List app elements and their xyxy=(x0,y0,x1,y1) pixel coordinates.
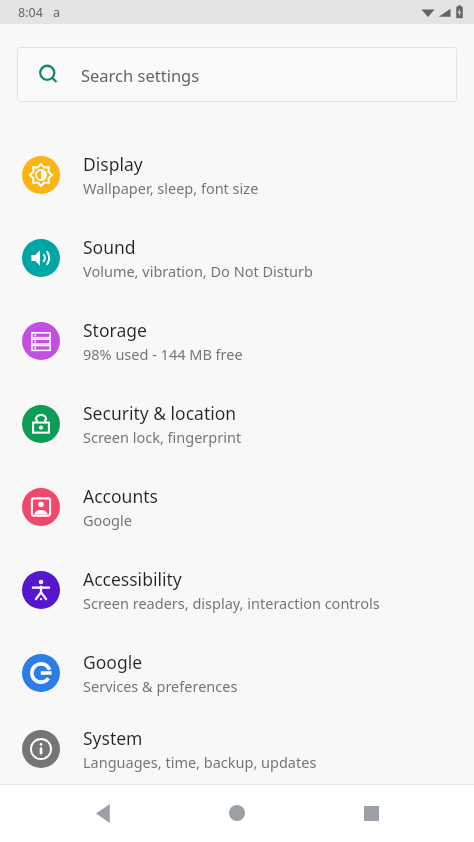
staticText: Sound xyxy=(83,235,136,259)
staticText: Languages, time, backup, updates xyxy=(83,752,317,772)
other: Search xyxy=(38,64,60,86)
staticText: System xyxy=(83,726,143,750)
button[interactable]: Display xyxy=(0,133,474,216)
staticText: Services & preferences xyxy=(83,676,238,696)
staticText: Security & location xyxy=(83,401,237,425)
button[interactable]: Recent apps xyxy=(341,784,401,842)
staticText: Accounts xyxy=(83,484,158,508)
staticText: Volume, vibration, Do Not Disturb xyxy=(83,261,313,281)
staticText: Google xyxy=(83,650,143,674)
staticText: Google xyxy=(83,510,132,530)
staticText: a xyxy=(53,4,61,21)
button[interactable]: Back xyxy=(74,784,134,842)
button[interactable]: Sound xyxy=(0,216,474,299)
staticText: Display xyxy=(83,152,143,176)
button[interactable]: Home xyxy=(207,784,267,842)
button[interactable]: Search xyxy=(17,47,457,102)
staticText: Storage xyxy=(83,318,147,342)
staticText: Wallpaper, sleep, font size xyxy=(83,178,259,198)
staticText: Screen lock, fingerprint xyxy=(83,427,242,447)
button[interactable]: Security & location xyxy=(0,382,474,465)
button[interactable]: Google xyxy=(0,631,474,714)
button[interactable]: Storage xyxy=(0,299,474,382)
staticText: Search settings xyxy=(81,64,200,86)
button[interactable]: System xyxy=(0,714,474,784)
staticText: 8:04 xyxy=(18,4,43,21)
staticText: 98% used - 144 MB free xyxy=(83,344,243,364)
button[interactable]: Accessibility xyxy=(0,548,474,631)
staticText: Screen readers, display, interaction con… xyxy=(83,593,380,613)
staticText: Accessibility xyxy=(83,567,182,591)
button[interactable]: Accounts xyxy=(0,465,474,548)
